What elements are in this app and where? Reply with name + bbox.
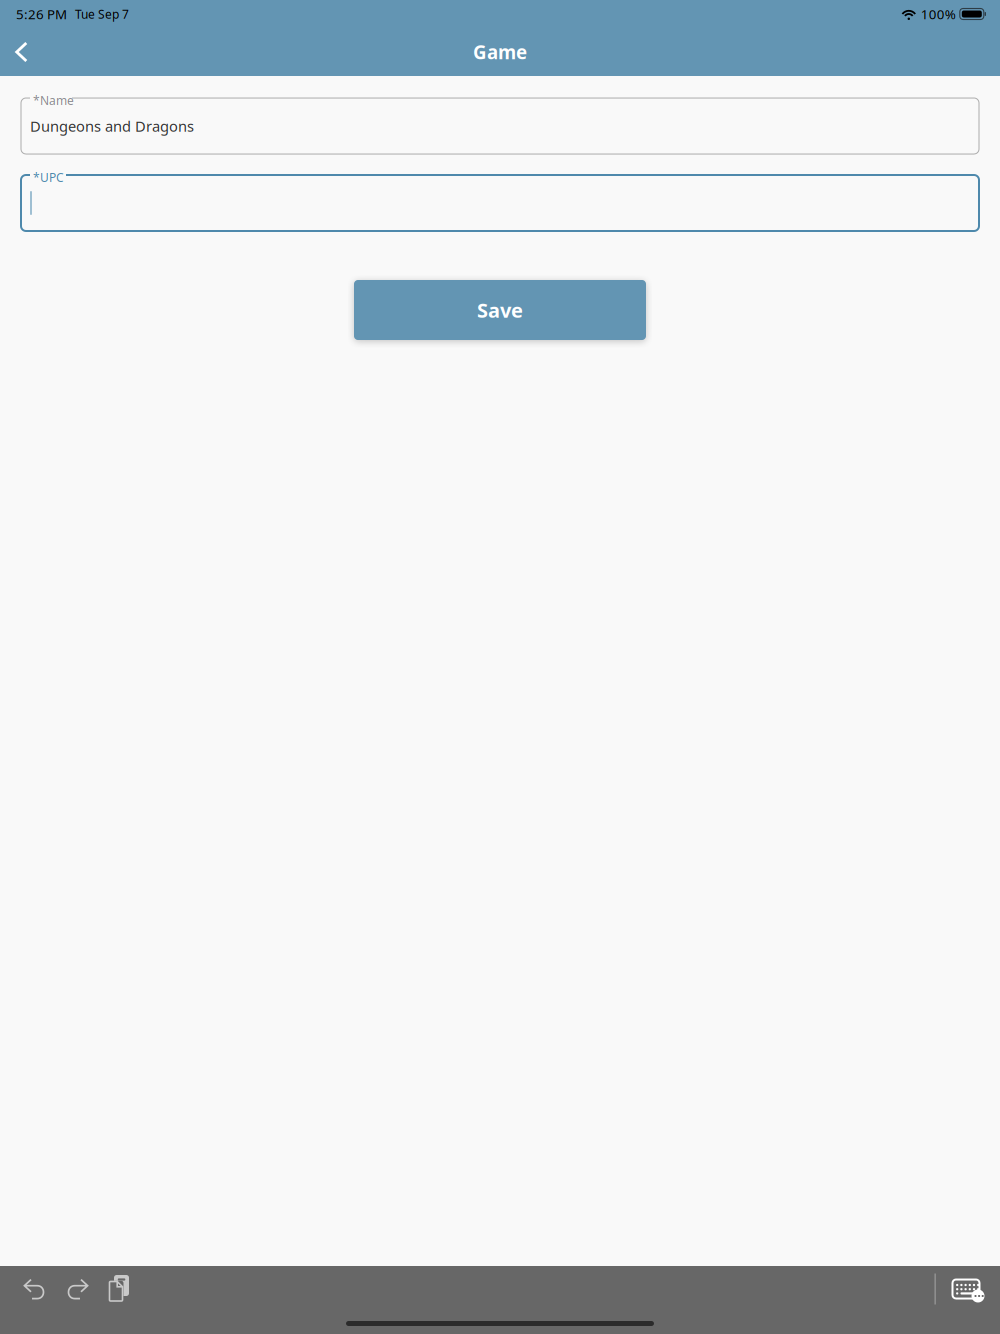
button[interactable]: Undo [14, 1265, 56, 1313]
staticText: Tue Sep 7 [75, 6, 129, 22]
staticText: Game [473, 40, 527, 64]
button[interactable]: Hide keyboard [946, 1265, 986, 1313]
staticText: *Name [33, 92, 74, 108]
button[interactable]: Redo [56, 1265, 98, 1313]
button[interactable]: Dungeons and Dragons [21, 98, 979, 154]
button[interactable]: Save [354, 280, 646, 340]
staticText: 5:26 PM [16, 5, 67, 23]
staticText: Save [477, 297, 523, 323]
button[interactable]: Paste [98, 1265, 140, 1313]
staticText: *UPC [33, 169, 64, 185]
button[interactable]: Back [0, 28, 43, 76]
button[interactable]: *UPC [21, 175, 979, 231]
staticText: Dungeons and Dragons [30, 116, 194, 136]
staticText: 100% [921, 5, 956, 23]
